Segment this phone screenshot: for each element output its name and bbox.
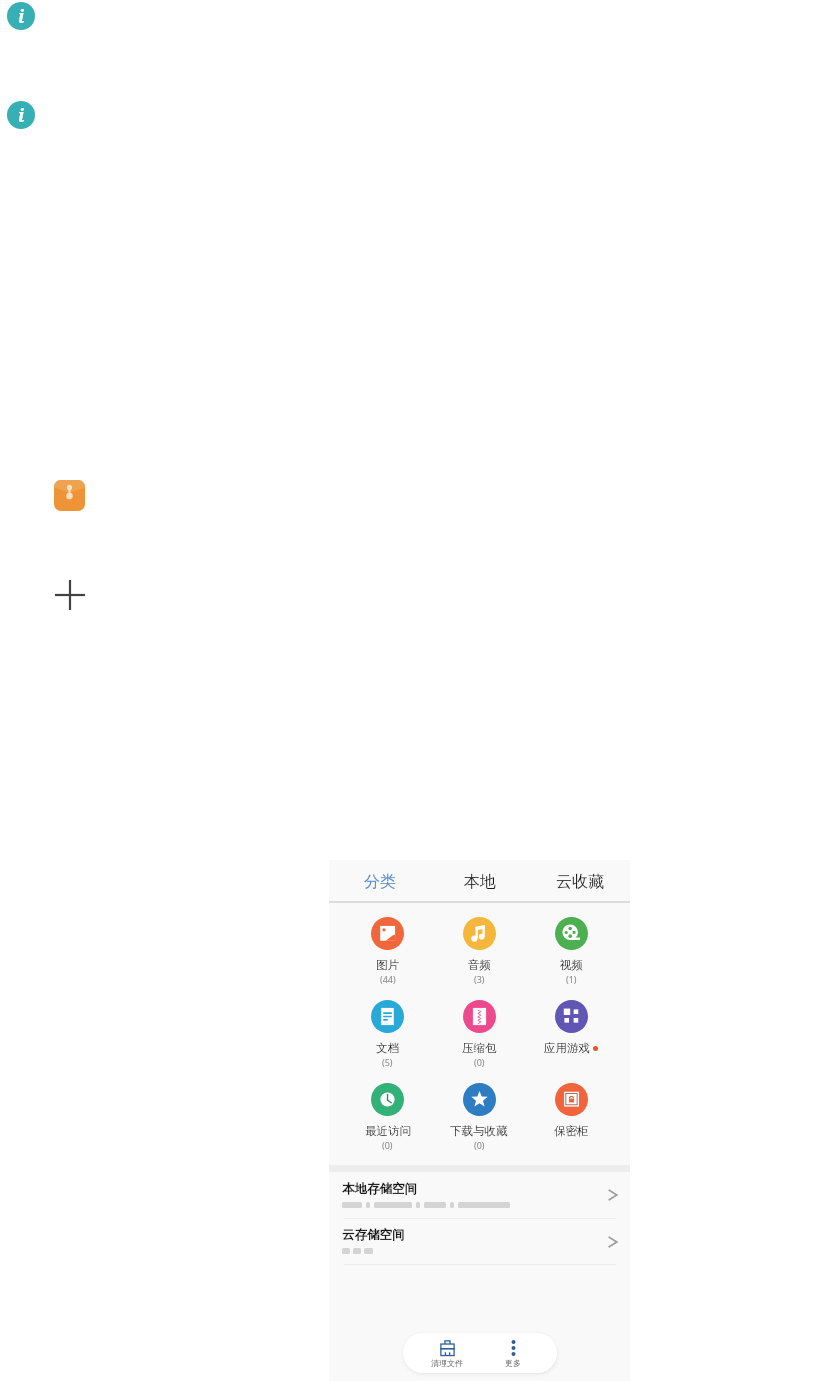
- button[interactable]: 最近访问: [342, 1069, 433, 1152]
- button[interactable]: 下载与收藏: [433, 1069, 525, 1152]
- staticText: 云存储空间: [342, 1227, 405, 1243]
- staticText: 清理文件: [417, 1358, 477, 1368]
- staticText: (0): [474, 1139, 485, 1151]
- staticText: (5): [382, 1056, 393, 1068]
- staticText: 音频: [468, 958, 491, 972]
- button[interactable]: Folder: [54, 480, 85, 511]
- button[interactable]: 本地: [430, 863, 530, 901]
- button[interactable]: 云存储空间: [329, 1219, 630, 1264]
- button[interactable]: Add: [55, 580, 85, 610]
- staticText: 本地存储空间: [342, 1181, 417, 1197]
- button[interactable]: 文档: [342, 986, 433, 1069]
- staticText: 最近访问: [365, 1124, 411, 1138]
- staticText: (0): [382, 1139, 393, 1151]
- button[interactable]: 保密柜: [525, 1069, 617, 1152]
- staticText: 云收藏: [556, 872, 604, 892]
- staticText: 应用游戏: [544, 1041, 590, 1055]
- staticText: (1): [566, 973, 577, 985]
- staticText: 下载与收藏: [450, 1124, 508, 1138]
- staticText: (44): [380, 973, 396, 985]
- staticText: 文档: [376, 1041, 399, 1055]
- button[interactable]: 分类: [329, 863, 430, 901]
- staticText: 视频: [560, 958, 583, 972]
- button[interactable]: 音频: [433, 903, 525, 986]
- button[interactable]: 压缩包: [433, 986, 525, 1069]
- button[interactable]: 云收藏: [530, 863, 630, 901]
- staticText: 更多: [483, 1358, 543, 1368]
- staticText: i: [18, 4, 25, 29]
- button[interactable]: Information: [7, 2, 35, 30]
- staticText: 压缩包: [462, 1041, 497, 1055]
- button[interactable]: 清理文件: [417, 1333, 477, 1373]
- staticText: 保密柜: [554, 1124, 589, 1138]
- staticText: (3): [474, 973, 485, 985]
- button[interactable]: 应用游戏: [525, 986, 617, 1069]
- button[interactable]: 本地存储空间: [329, 1172, 630, 1218]
- staticText: 图片: [376, 958, 399, 972]
- button[interactable]: 图片: [342, 903, 433, 986]
- button[interactable]: Information: [7, 101, 35, 129]
- button[interactable]: 视频: [525, 903, 617, 986]
- staticText: 本地: [464, 872, 496, 892]
- staticText: (0): [474, 1056, 485, 1068]
- staticText: 分类: [364, 872, 396, 892]
- staticText: i: [18, 103, 25, 128]
- button[interactable]: 更多: [483, 1333, 543, 1373]
